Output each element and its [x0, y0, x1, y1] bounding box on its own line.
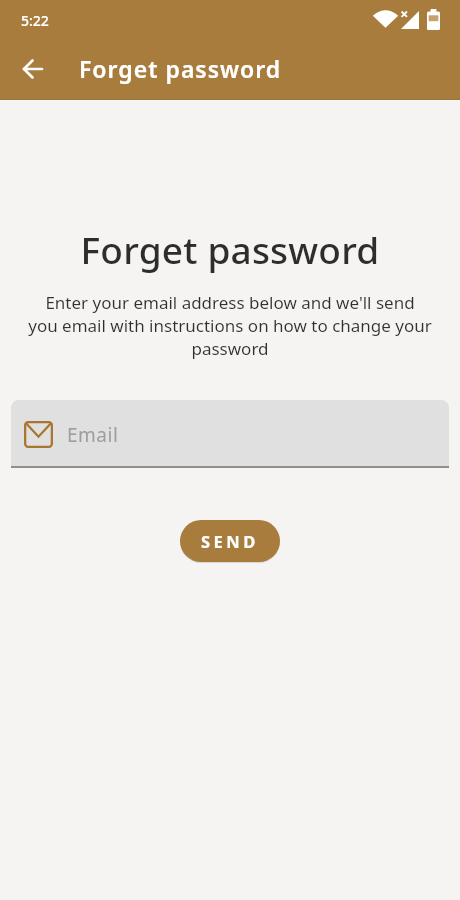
staticText: SEND: [201, 530, 259, 552]
staticText: Forget password: [79, 53, 282, 84]
staticText: Enter your email address below and we'll…: [0, 291, 460, 360]
button[interactable]: Email: [11, 400, 449, 468]
staticText: Email: [67, 422, 119, 448]
staticText: Forget password: [0, 224, 460, 274]
staticText: 5:22: [21, 11, 49, 30]
button[interactable]: SEND: [180, 520, 280, 562]
button[interactable]: [14, 50, 52, 88]
